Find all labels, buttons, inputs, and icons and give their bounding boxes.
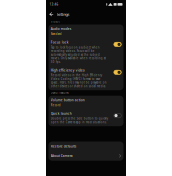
staticText: Double press the Side button to quickly … bbox=[51, 117, 108, 124]
staticText: Useful features bbox=[50, 91, 68, 95]
staticText: High efficiency video bbox=[51, 68, 85, 72]
button[interactable]: Restore defaults bbox=[48, 141, 123, 151]
staticText: Quick launch bbox=[51, 111, 72, 116]
button[interactable]: High efficiency video bbox=[48, 66, 123, 90]
staticText: Standard bbox=[51, 32, 62, 36]
staticText: Audio modes bbox=[51, 27, 72, 31]
staticText: Record videos in the High Efficiency Vid… bbox=[51, 73, 107, 88]
button[interactable]: About Camera bbox=[48, 151, 123, 161]
button[interactable]: Quick launch bbox=[48, 109, 123, 126]
button[interactable]: Focus lock bbox=[48, 38, 123, 66]
button[interactable]: Back bbox=[48, 11, 55, 17]
button[interactable]: Volume button action bbox=[48, 96, 123, 109]
staticText: Tap to lock focus on a subject when reco… bbox=[51, 45, 106, 64]
staticText: Volume button action bbox=[51, 98, 85, 102]
staticText: Settings bbox=[57, 11, 70, 17]
staticText: Record bbox=[51, 103, 61, 107]
button[interactable]: Audio modes bbox=[48, 24, 123, 38]
staticText: Videos bbox=[50, 20, 59, 23]
staticText: About Camera bbox=[51, 154, 73, 158]
staticText: 13:46 bbox=[49, 2, 58, 6]
staticText: Restore defaults bbox=[51, 144, 77, 148]
staticText: Focus lock bbox=[51, 40, 69, 45]
